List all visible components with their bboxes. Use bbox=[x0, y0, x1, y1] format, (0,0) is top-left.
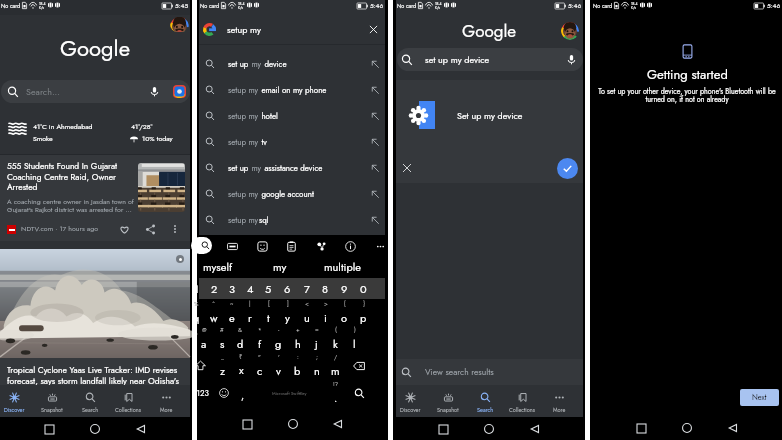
button[interactable]: Collections bbox=[109, 385, 147, 417]
button[interactable]: , bbox=[233, 379, 252, 407]
button[interactable]: Next bbox=[740, 389, 779, 406]
button[interactable]: Back bbox=[724, 419, 742, 437]
button[interactable]: Account bbox=[170, 17, 189, 32]
button[interactable]: Translate bbox=[314, 239, 328, 253]
button[interactable]: Search bbox=[467, 385, 504, 417]
button[interactable]: setup my bbox=[199, 103, 385, 129]
button[interactable]: Search bbox=[71, 385, 109, 417]
staticText: = bbox=[315, 326, 319, 335]
button[interactable]: ' bbox=[269, 352, 288, 379]
button[interactable]: % bbox=[187, 299, 205, 326]
button[interactable]: set up my device bbox=[397, 48, 583, 71]
button[interactable]: Microsoft SwiftKey bbox=[252, 379, 326, 407]
button[interactable]: set up bbox=[199, 51, 385, 77]
button[interactable]: Back bbox=[132, 420, 150, 438]
button[interactable]: ₹ bbox=[232, 352, 250, 379]
button[interactable]: = bbox=[307, 326, 326, 352]
button[interactable]: More bbox=[147, 385, 185, 417]
button[interactable]: Search bbox=[191, 237, 212, 254]
button[interactable]: Recents bbox=[434, 420, 452, 438]
button[interactable]: [ bbox=[259, 299, 278, 326]
button[interactable]: / bbox=[326, 352, 345, 379]
button[interactable]: Recents bbox=[40, 420, 58, 438]
button[interactable]: < bbox=[297, 299, 316, 326]
button[interactable]: ] bbox=[278, 299, 297, 326]
button[interactable]: 0 bbox=[354, 278, 373, 299]
button[interactable]: Recents bbox=[238, 415, 256, 433]
staticText: p bbox=[360, 310, 367, 326]
button[interactable]: ( bbox=[326, 326, 345, 352]
button[interactable]: my bbox=[249, 256, 311, 278]
button[interactable]: Search bbox=[345, 379, 373, 407]
button[interactable]: # bbox=[213, 326, 231, 352]
button[interactable]: setup my bbox=[199, 77, 385, 103]
button[interactable]: & bbox=[231, 326, 250, 352]
button[interactable]: setup my bbox=[199, 207, 385, 233]
button[interactable]: Account bbox=[561, 22, 579, 40]
button[interactable]: Clipboard bbox=[284, 239, 298, 253]
button[interactable]: Discover bbox=[0, 385, 33, 417]
button[interactable]: - bbox=[269, 326, 288, 352]
button[interactable]: ^ bbox=[205, 299, 223, 326]
button[interactable]: { bbox=[335, 299, 354, 326]
button[interactable]: Home bbox=[284, 415, 302, 433]
button[interactable]: Back bbox=[526, 420, 544, 438]
button[interactable]: } bbox=[354, 299, 373, 326]
button[interactable]: 4 bbox=[241, 278, 259, 299]
button[interactable]: myself bbox=[187, 256, 249, 278]
button[interactable]: Dismiss bbox=[399, 160, 415, 176]
button[interactable]: Snapshot bbox=[429, 385, 467, 417]
button[interactable]: 8 bbox=[316, 278, 335, 299]
button[interactable]: Shift bbox=[187, 352, 214, 379]
button[interactable]: Clear bbox=[364, 20, 382, 38]
button[interactable]: More bbox=[541, 385, 578, 417]
button[interactable]: 3 bbox=[223, 278, 241, 299]
button[interactable]: Discover bbox=[391, 385, 429, 417]
button[interactable]: ~ bbox=[223, 299, 241, 326]
button[interactable]: Back bbox=[329, 415, 347, 433]
button[interactable]: Home bbox=[678, 419, 696, 437]
button[interactable]: ) bbox=[345, 326, 364, 352]
button[interactable]: Snapshot bbox=[33, 385, 71, 417]
button[interactable]: | bbox=[241, 299, 259, 326]
button[interactable]: Recents bbox=[632, 419, 650, 437]
button[interactable]: 7 bbox=[297, 278, 316, 299]
button[interactable]: set up bbox=[199, 155, 385, 181]
staticText: s bbox=[220, 336, 225, 352]
button[interactable]: 6 bbox=[278, 278, 297, 299]
button[interactable]: * bbox=[250, 326, 269, 352]
button[interactable]: Collections bbox=[504, 385, 541, 417]
button[interactable]: 5 bbox=[259, 278, 278, 299]
button[interactable]: 1 bbox=[187, 278, 205, 299]
button[interactable]: More bbox=[373, 239, 387, 253]
button[interactable]: 2 bbox=[205, 278, 223, 299]
button[interactable]: Info bbox=[176, 255, 184, 263]
button[interactable]: Backspace bbox=[345, 352, 373, 379]
button[interactable]: Home bbox=[86, 420, 104, 438]
staticText: ] bbox=[287, 300, 289, 309]
button[interactable]: Like bbox=[116, 221, 132, 237]
button[interactable]: Search... bbox=[1, 80, 190, 103]
button[interactable]: ; bbox=[307, 352, 326, 379]
button[interactable]: _ bbox=[214, 352, 232, 379]
button[interactable]: GIF bbox=[225, 239, 239, 253]
button[interactable]: setup my bbox=[199, 181, 385, 207]
button[interactable]: ?123 bbox=[187, 379, 214, 407]
button[interactable]: > bbox=[316, 299, 335, 326]
button[interactable]: !? bbox=[326, 379, 345, 407]
button[interactable]: : bbox=[288, 352, 307, 379]
button[interactable]: multiple bbox=[311, 256, 373, 278]
button[interactable]: @ bbox=[195, 326, 213, 352]
button[interactable]: setup my bbox=[199, 129, 385, 155]
button[interactable]: " bbox=[250, 352, 269, 379]
button[interactable]: More options bbox=[168, 222, 182, 236]
button[interactable]: Info bbox=[343, 239, 357, 253]
button[interactable]: Emoji bbox=[214, 379, 233, 407]
staticText: Google bbox=[462, 19, 517, 44]
button[interactable]: 9 bbox=[335, 278, 354, 299]
button[interactable]: Home bbox=[480, 420, 498, 438]
button[interactable]: Confirm bbox=[557, 158, 578, 179]
button[interactable]: + bbox=[288, 326, 307, 352]
button[interactable]: Stickers bbox=[255, 239, 269, 253]
button[interactable]: Share bbox=[142, 221, 158, 237]
